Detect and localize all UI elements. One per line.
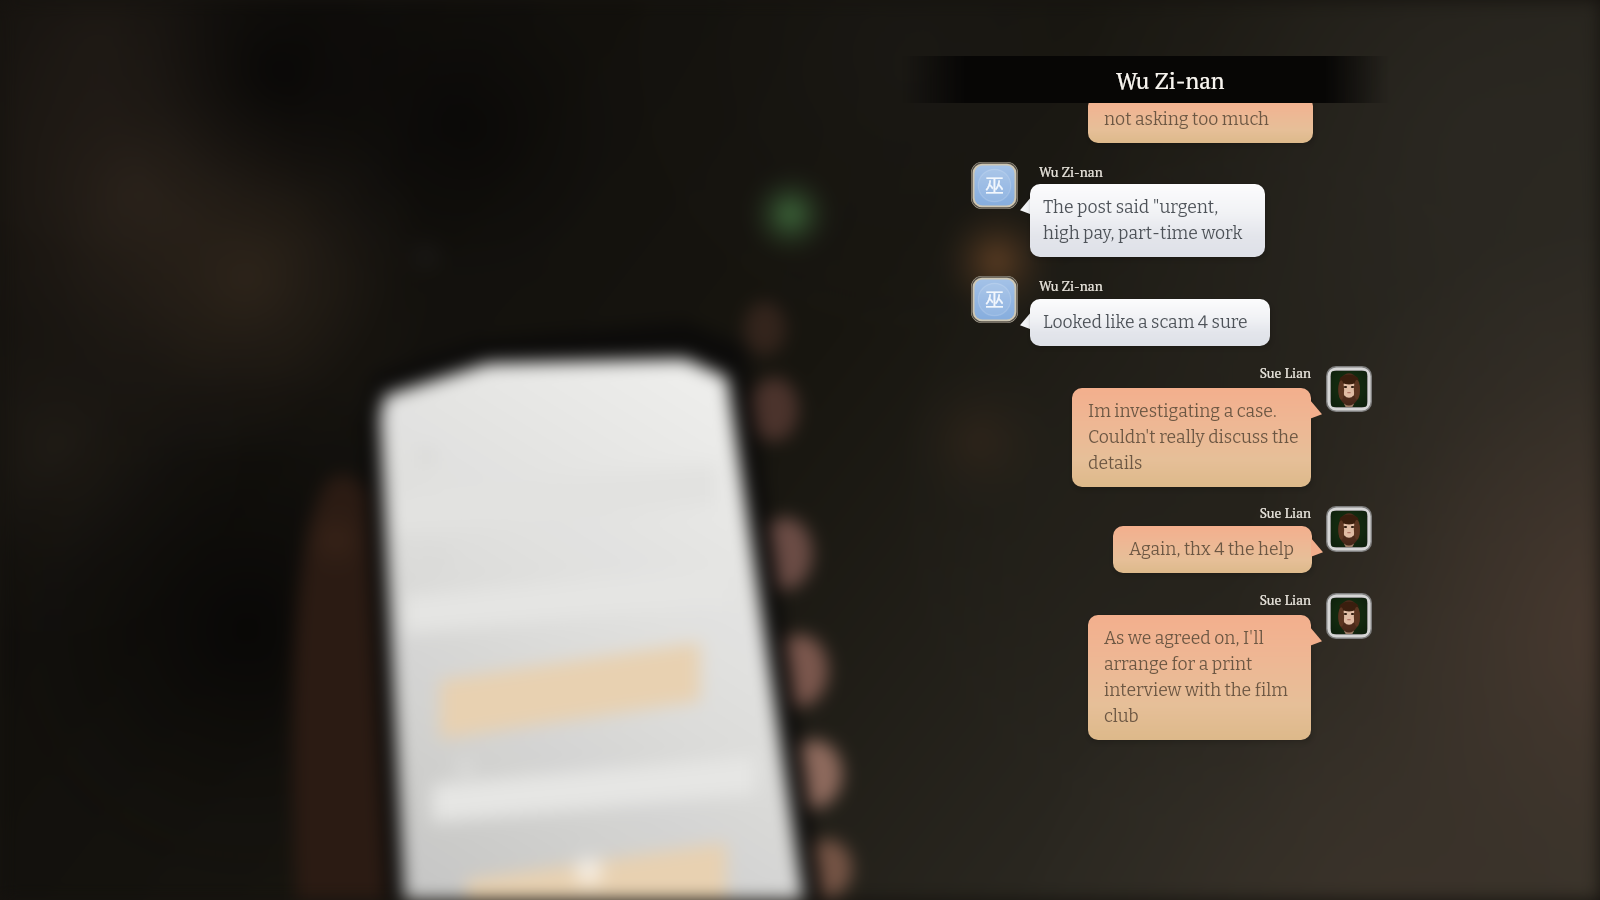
button[interactable]: Sue Lian avatar [1326,506,1372,552]
staticText: 巫 [985,285,1005,313]
staticText: not asking too much [1104,109,1269,130]
button[interactable]: Im investigating a case. Couldn't really… [1088,401,1299,474]
button[interactable]: Wu Zi-nan avatar [971,162,1018,209]
button[interactable]: Wu Zi-nan avatar [971,276,1018,323]
staticText: Sue Lian [1011,504,1311,900]
staticText: Looked like a scam 4 sure [1043,312,1248,333]
button[interactable]: The post said "urgent, high pay, part-ti… [1043,197,1253,244]
button[interactable]: Sue Lian avatar [1326,366,1372,412]
button[interactable]: not asking too much [1104,109,1301,130]
button[interactable]: Looked like a scam 4 sure [1043,312,1258,333]
button[interactable]: Wu Zi-nan [900,56,1390,103]
button[interactable]: As we agreed on, I'll arrange for a prin… [1104,628,1299,727]
staticText: As we agreed on, I'll arrange for a prin… [1104,628,1288,727]
staticText: The post said "urgent, high pay, part-ti… [1043,197,1243,244]
staticText: Im investigating a case. Couldn't really… [1088,401,1299,474]
staticText: Wu Zi-nan [1116,65,1225,95]
staticText: Sue Lian [1011,364,1311,900]
staticText: Wu Zi-nan [1039,277,1103,295]
staticText: 巫 [985,171,1005,199]
button[interactable]: Again, thx 4 the help [1129,539,1300,560]
staticText: Wu Zi-nan [1039,163,1103,181]
button[interactable]: Sue Lian avatar [1326,593,1372,639]
staticText: Sue Lian [1011,591,1311,900]
staticText: Again, thx 4 the help [1129,539,1294,560]
